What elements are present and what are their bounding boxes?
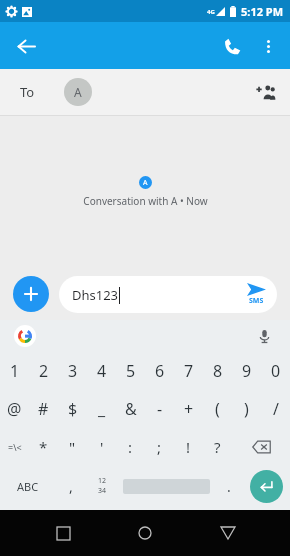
button[interactable]: ' (87, 428, 116, 466)
button[interactable]: Numbers (85, 466, 119, 506)
button[interactable]: Voice input (252, 324, 276, 348)
button[interactable]: ; (145, 428, 174, 466)
staticText: To (20, 83, 35, 101)
button[interactable]: ? (203, 428, 232, 466)
staticText: $ (68, 398, 78, 420)
staticText: 5:12 PM (241, 4, 284, 19)
staticText: * (39, 437, 48, 457)
button[interactable]: =\< (0, 428, 29, 466)
button[interactable]: Dhs123 (59, 276, 277, 313)
staticText: 5 (126, 360, 136, 382)
staticText: . (227, 477, 231, 496)
staticText: ' (100, 437, 104, 457)
button[interactable]: . (214, 466, 243, 506)
staticText: " (69, 437, 76, 457)
button[interactable]: & (116, 390, 145, 428)
button[interactable]: 2 (29, 352, 58, 390)
button[interactable]: Google (14, 325, 36, 347)
staticText: - (157, 398, 163, 420)
button[interactable]: @ (0, 390, 29, 428)
staticText: SMS (249, 296, 264, 306)
button[interactable]: Add contacts (248, 75, 282, 109)
button[interactable]: 8 (203, 352, 232, 390)
staticText: 12 (98, 476, 107, 486)
staticText: 0 (271, 360, 281, 382)
button[interactable]: Back (8, 28, 44, 64)
staticText: 6 (155, 360, 165, 382)
button[interactable]: 6 (145, 352, 174, 390)
button[interactable]: ( (203, 390, 232, 428)
staticText: A (143, 178, 148, 188)
staticText: + (184, 398, 194, 420)
staticText: ; (157, 437, 162, 457)
button[interactable]: _ (87, 390, 116, 428)
staticText: : (128, 437, 133, 457)
staticText: 9 (242, 360, 252, 382)
button[interactable]: Attach (13, 276, 49, 312)
button[interactable]: Recents (43, 513, 83, 553)
button[interactable]: 7 (174, 352, 203, 390)
staticText: 3 (68, 360, 78, 382)
button[interactable]: 1 (0, 352, 29, 390)
button[interactable]: ! (174, 428, 203, 466)
button[interactable]: More options (250, 28, 286, 64)
button[interactable]: Call (214, 28, 250, 64)
staticText: =\< (8, 441, 22, 453)
staticText: A (74, 84, 82, 100)
button[interactable]: # (29, 390, 58, 428)
staticText: 4G (207, 8, 215, 16)
button[interactable]: 9 (232, 352, 261, 390)
button[interactable]: / (261, 390, 290, 428)
staticText: & (125, 398, 137, 420)
staticText: @ (7, 398, 22, 420)
staticText: Dhs123 (72, 286, 119, 304)
button[interactable]: Back (208, 513, 248, 553)
button[interactable]: + (174, 390, 203, 428)
button[interactable]: 4 (87, 352, 116, 390)
staticText: ! (186, 437, 191, 457)
staticText: / (273, 398, 279, 420)
staticText: 2 (39, 360, 49, 382)
button[interactable]: Space (119, 466, 214, 506)
staticText: _ (98, 398, 106, 420)
button[interactable]: Enter (250, 470, 283, 503)
button[interactable]: , (56, 466, 85, 506)
staticText: 4 (97, 360, 107, 382)
button[interactable]: ) (232, 390, 261, 428)
staticText: 1 (10, 360, 20, 382)
staticText: , (69, 477, 73, 496)
button[interactable]: Backspace (232, 428, 290, 466)
button[interactable]: $ (58, 390, 87, 428)
button[interactable]: : (116, 428, 145, 466)
button[interactable]: - (145, 390, 174, 428)
button[interactable]: 0 (261, 352, 290, 390)
button[interactable]: ABC (0, 466, 56, 506)
staticText: ? (214, 437, 221, 457)
staticText: 7 (184, 360, 194, 382)
staticText: ) (244, 398, 249, 420)
button[interactable]: Home (125, 513, 165, 553)
button[interactable]: Send SMS (247, 283, 266, 306)
button[interactable]: 5 (116, 352, 145, 390)
button[interactable]: * (29, 428, 58, 466)
button[interactable]: 3 (58, 352, 87, 390)
staticText: 34 (98, 486, 107, 496)
staticText: 8 (213, 360, 223, 382)
staticText: # (38, 398, 49, 420)
staticText: ABC (17, 479, 39, 494)
button[interactable]: To (0, 69, 290, 115)
staticText: ( (215, 398, 220, 420)
button[interactable]: " (58, 428, 87, 466)
staticText: Conversation with A • Now (83, 194, 208, 208)
